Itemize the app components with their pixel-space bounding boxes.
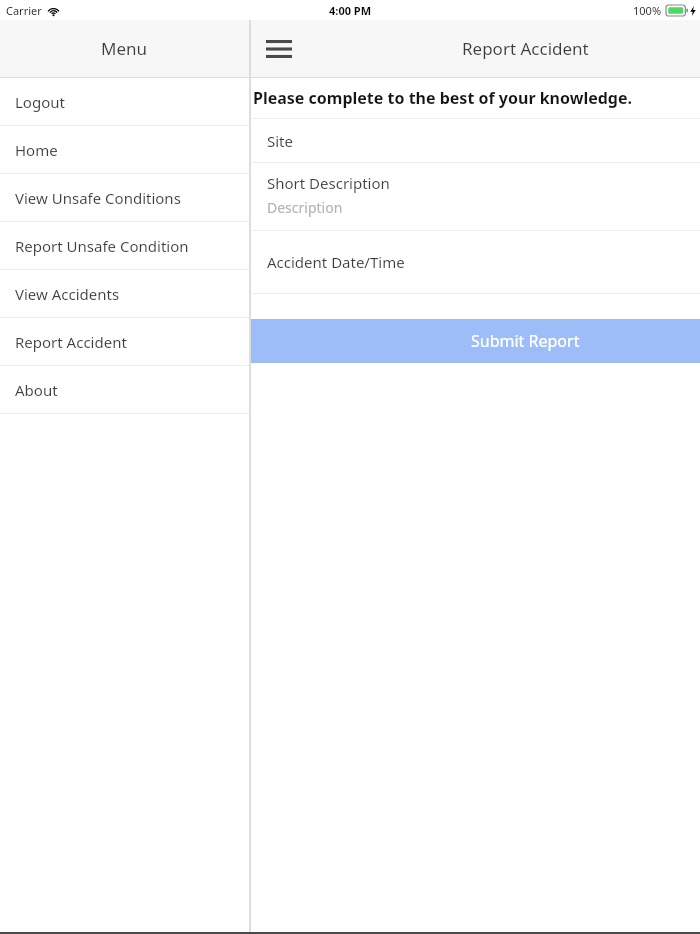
- staticText: Home: [15, 140, 58, 160]
- button[interactable]: Site: [251, 119, 700, 162]
- staticText: Site: [267, 131, 293, 151]
- button[interactable]: Open menu: [257, 27, 301, 71]
- staticText: Logout: [15, 92, 65, 112]
- button[interactable]: View Unsafe Conditions: [0, 174, 249, 221]
- staticText: View Unsafe Conditions: [15, 188, 181, 208]
- button[interactable]: Home: [0, 126, 249, 173]
- staticText: Short Description: [267, 173, 390, 193]
- staticText: Report Accident: [462, 37, 589, 60]
- button[interactable]: View Accidents: [0, 270, 249, 317]
- staticText: Report Accident: [15, 332, 127, 352]
- staticText: View Accidents: [15, 284, 120, 304]
- staticText: 4:00 PM: [329, 3, 372, 18]
- button[interactable]: Short Description: [251, 163, 700, 230]
- staticText: Submit Report: [471, 330, 580, 352]
- staticText: Description: [267, 198, 343, 217]
- staticText: 100%: [633, 3, 662, 18]
- staticText: Menu: [101, 37, 148, 60]
- staticText: Accident Date/Time: [267, 252, 405, 272]
- staticText: Report Unsafe Condition: [15, 236, 189, 256]
- button[interactable]: Report Unsafe Condition: [0, 222, 249, 269]
- button[interactable]: About: [0, 366, 249, 413]
- staticText: About: [15, 380, 58, 400]
- button[interactable]: Report Accident: [0, 318, 249, 365]
- button[interactable]: Submit Report: [251, 319, 700, 363]
- button[interactable]: Logout: [0, 78, 249, 125]
- staticText: Please complete to the best of your know…: [253, 87, 632, 109]
- staticText: Carrier: [6, 3, 42, 18]
- button[interactable]: Accident Date/Time: [251, 231, 700, 293]
